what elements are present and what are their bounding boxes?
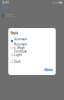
staticText: Light xyxy=(14,53,22,57)
staticText: 9:41 xyxy=(2,0,8,4)
staticText: Automatic (High Contrast) xyxy=(14,43,28,53)
button[interactable]: Dark xyxy=(8,58,56,65)
button[interactable]: Done xyxy=(43,68,53,71)
staticText: Dark xyxy=(14,60,21,63)
staticText: Automatic xyxy=(14,38,28,44)
button[interactable]: Light xyxy=(8,52,56,58)
button[interactable]: Automatic xyxy=(8,38,56,44)
staticText: ≋ xyxy=(56,1,58,4)
staticText: Style xyxy=(10,31,18,35)
staticText: Done xyxy=(44,68,52,72)
staticText: Style xyxy=(1,5,9,9)
button[interactable]: Automatic (High Contrast) xyxy=(8,44,56,52)
button[interactable]: Style xyxy=(0,5,10,9)
